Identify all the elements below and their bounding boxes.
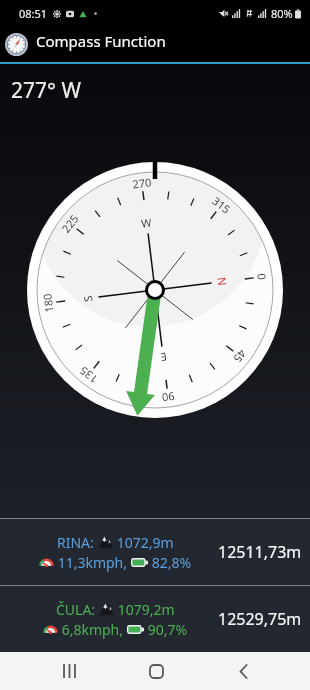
button[interactable]: Home xyxy=(116,652,196,690)
staticText: RINA: xyxy=(57,533,98,552)
staticText: 82,8% xyxy=(148,553,192,572)
staticText: 90,7% xyxy=(144,620,188,639)
staticText: 12529,75m xyxy=(218,608,302,630)
staticText: 6,8kmph, xyxy=(58,620,127,639)
button[interactable]: Recents xyxy=(29,652,109,690)
button[interactable]: Back xyxy=(203,652,283,690)
staticText: 12511,73m xyxy=(218,541,302,563)
button[interactable]: ČULA: xyxy=(0,586,310,652)
staticText: 80% xyxy=(271,6,293,21)
button[interactable]: Compass Function xyxy=(0,27,310,62)
staticText: 277° W xyxy=(11,76,82,105)
button[interactable]: RINA: xyxy=(0,519,310,585)
staticText: 11,3kmph, xyxy=(54,553,131,572)
staticText: Compass Function xyxy=(36,31,166,51)
staticText: 08:51 xyxy=(19,6,48,21)
staticText: 1079,2m xyxy=(114,600,175,619)
staticText: 1072,9m xyxy=(113,533,174,552)
staticText: ČULA: xyxy=(56,600,99,619)
